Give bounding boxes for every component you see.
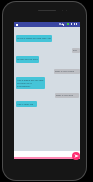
button[interactable]: i am 7 years old [16,101,37,107]
button[interactable] [14,151,80,157]
button[interactable]: hi this is digital bot how may i help yo… [16,35,52,42]
button[interactable]: aha [72,48,80,53]
staticText: aha [73,49,77,52]
staticText: hi this is digital bot how may i help yo… [17,37,51,40]
button[interactable]: what is your name [54,69,80,74]
staticText: hi how are you and when [17,58,38,61]
button[interactable]: what is your age [55,93,79,98]
staticText: what is your name [55,70,74,73]
button[interactable]: i am a digital bot can help you with lot… [16,77,45,89]
staticText: what is your age [56,94,73,97]
button[interactable]: hi how are you and when [16,56,39,63]
button[interactable]: Send message [72,152,80,160]
staticText: i am a digital bot can help you with lot… [17,79,44,88]
staticText: i am 7 years old [17,103,34,106]
